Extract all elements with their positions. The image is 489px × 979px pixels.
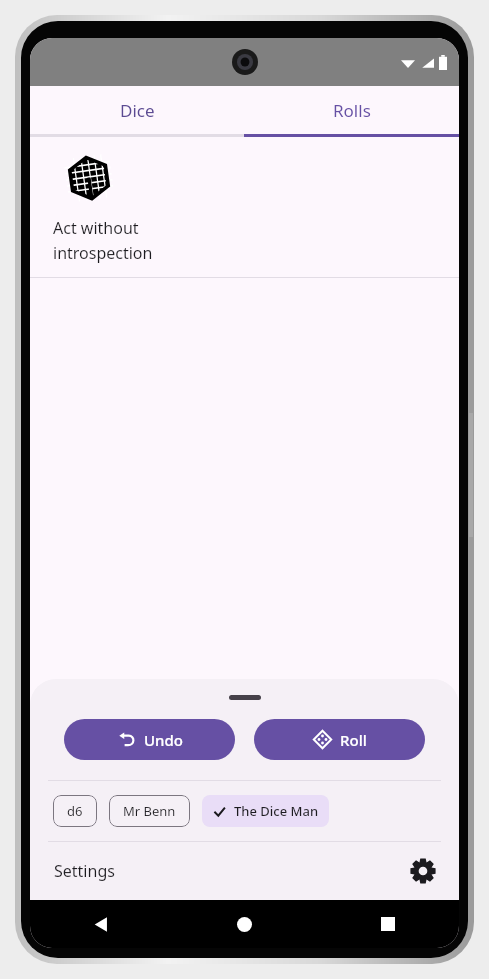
staticText: Rolls — [333, 99, 371, 122]
staticText: Mr Benn — [123, 802, 176, 820]
other: Settings — [409, 857, 437, 885]
button[interactable]: The Dice Man — [202, 795, 329, 827]
button[interactable]: Dice — [30, 86, 244, 134]
button[interactable]: Home — [173, 900, 316, 948]
staticText: Undo — [144, 730, 183, 750]
staticText: Dice — [120, 99, 155, 122]
staticText: Act without introspection — [53, 217, 153, 263]
button[interactable]: Recents — [316, 900, 459, 948]
button[interactable]: Mr Benn — [109, 795, 190, 827]
staticText: Roll — [340, 730, 367, 750]
button[interactable]: Back — [30, 900, 173, 948]
button[interactable]: Rolls — [244, 86, 459, 134]
button[interactable]: d6 — [53, 795, 97, 827]
button[interactable]: Act without introspection — [30, 137, 459, 277]
staticText: The Dice Man — [234, 802, 319, 820]
button[interactable]: Settings — [30, 842, 459, 900]
staticText: d6 — [67, 802, 83, 820]
button[interactable]: Roll — [254, 719, 425, 760]
staticText: Settings — [54, 860, 115, 882]
button[interactable]: Undo — [64, 719, 235, 760]
